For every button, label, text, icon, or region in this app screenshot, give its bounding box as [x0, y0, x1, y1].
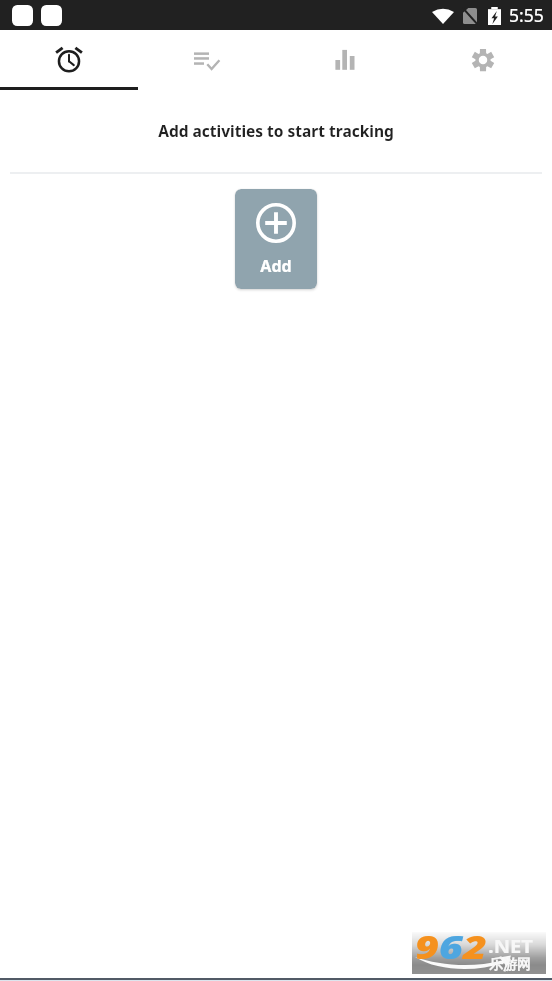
staticText: 9 — [415, 926, 439, 968]
button[interactable]: Add — [235, 189, 317, 289]
staticText: .NET — [488, 934, 534, 959]
staticText: 5:55 — [509, 3, 544, 27]
staticText: Add activities to start tracking — [0, 120, 552, 141]
staticText: 6 — [439, 926, 463, 968]
staticText: Add — [235, 255, 317, 277]
staticText: 乐游网 — [489, 956, 531, 974]
button[interactable]: Statistics — [276, 30, 414, 90]
button[interactable]: Alarms — [0, 30, 138, 90]
button[interactable]: Tasks — [138, 30, 276, 90]
staticText: 2 — [463, 926, 487, 968]
button[interactable]: Settings — [414, 30, 552, 90]
